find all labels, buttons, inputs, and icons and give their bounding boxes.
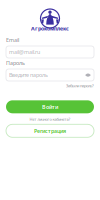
staticText: Регистрация	[34, 127, 66, 134]
button[interactable]: Регистрация	[6, 124, 94, 137]
staticText: Нет личного кабинета?	[29, 117, 70, 122]
staticText: Email	[6, 36, 19, 44]
button[interactable]: Войти	[6, 100, 94, 113]
button[interactable]: Забыли пароль?	[66, 83, 94, 88]
staticText: Агрокомплекс	[31, 25, 69, 32]
staticText: Войти	[42, 103, 58, 110]
staticText: Забыли пароль?	[66, 83, 94, 88]
staticText: Введите пароль	[9, 71, 48, 79]
staticText: mail@mail.ru	[9, 48, 40, 56]
staticText: Пароль	[6, 59, 25, 67]
